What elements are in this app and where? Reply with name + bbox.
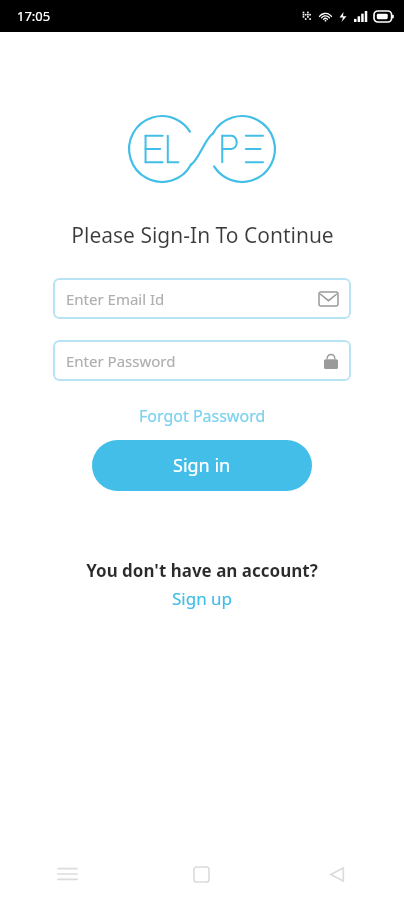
- button[interactable]: Back: [269, 848, 404, 900]
- staticText: 17:05: [17, 7, 51, 25]
- button[interactable]: Enter Email Id: [53, 278, 351, 319]
- button[interactable]: Sign up: [166, 585, 239, 612]
- button[interactable]: Recent apps: [0, 848, 134, 900]
- staticText: Sign in: [173, 453, 231, 478]
- staticText: Please Sign-In To Continue: [71, 221, 334, 250]
- button[interactable]: Enter Password: [53, 340, 351, 381]
- staticText: Enter Email Id: [66, 289, 319, 309]
- button[interactable]: Sign in: [92, 440, 312, 491]
- button[interactable]: Home: [134, 848, 269, 900]
- staticText: Sign up: [172, 587, 233, 610]
- button[interactable]: Forgot Password: [133, 403, 272, 429]
- staticText: Enter Password: [66, 351, 324, 371]
- staticText: Forgot Password: [139, 405, 266, 427]
- staticText: You don't have an account?: [86, 559, 318, 582]
- other: ELPE logo: [128, 115, 276, 183]
